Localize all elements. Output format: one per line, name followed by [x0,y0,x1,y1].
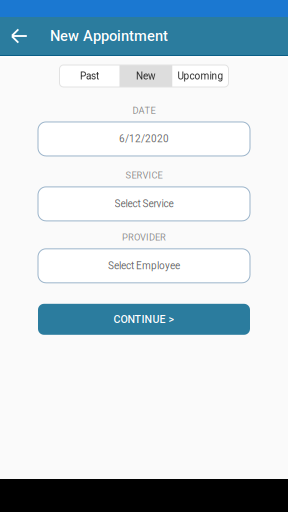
button[interactable]: Select Service [38,187,250,221]
button[interactable]: CONTINUE > [38,304,250,335]
button[interactable]: Select Employee [38,249,250,283]
button[interactable]: Upcoming [172,65,228,87]
button[interactable]: Back [0,17,38,55]
staticText: PROVIDER [122,232,166,243]
staticText: Past [80,70,99,82]
staticText: Select Employee [108,260,180,272]
button[interactable]: Past [59,65,119,87]
staticText: New Appointment [50,27,168,45]
button[interactable]: New [119,65,172,87]
staticText: CONTINUE > [113,313,174,326]
button[interactable]: 6/12/2020 [38,122,250,156]
staticText: Upcoming [177,70,223,82]
staticText: New [136,70,156,82]
staticText: 6/12/2020 [119,133,169,145]
staticText: Select Service [114,198,173,210]
staticText: DATE [132,105,155,116]
staticText: SERVICE [125,170,162,181]
